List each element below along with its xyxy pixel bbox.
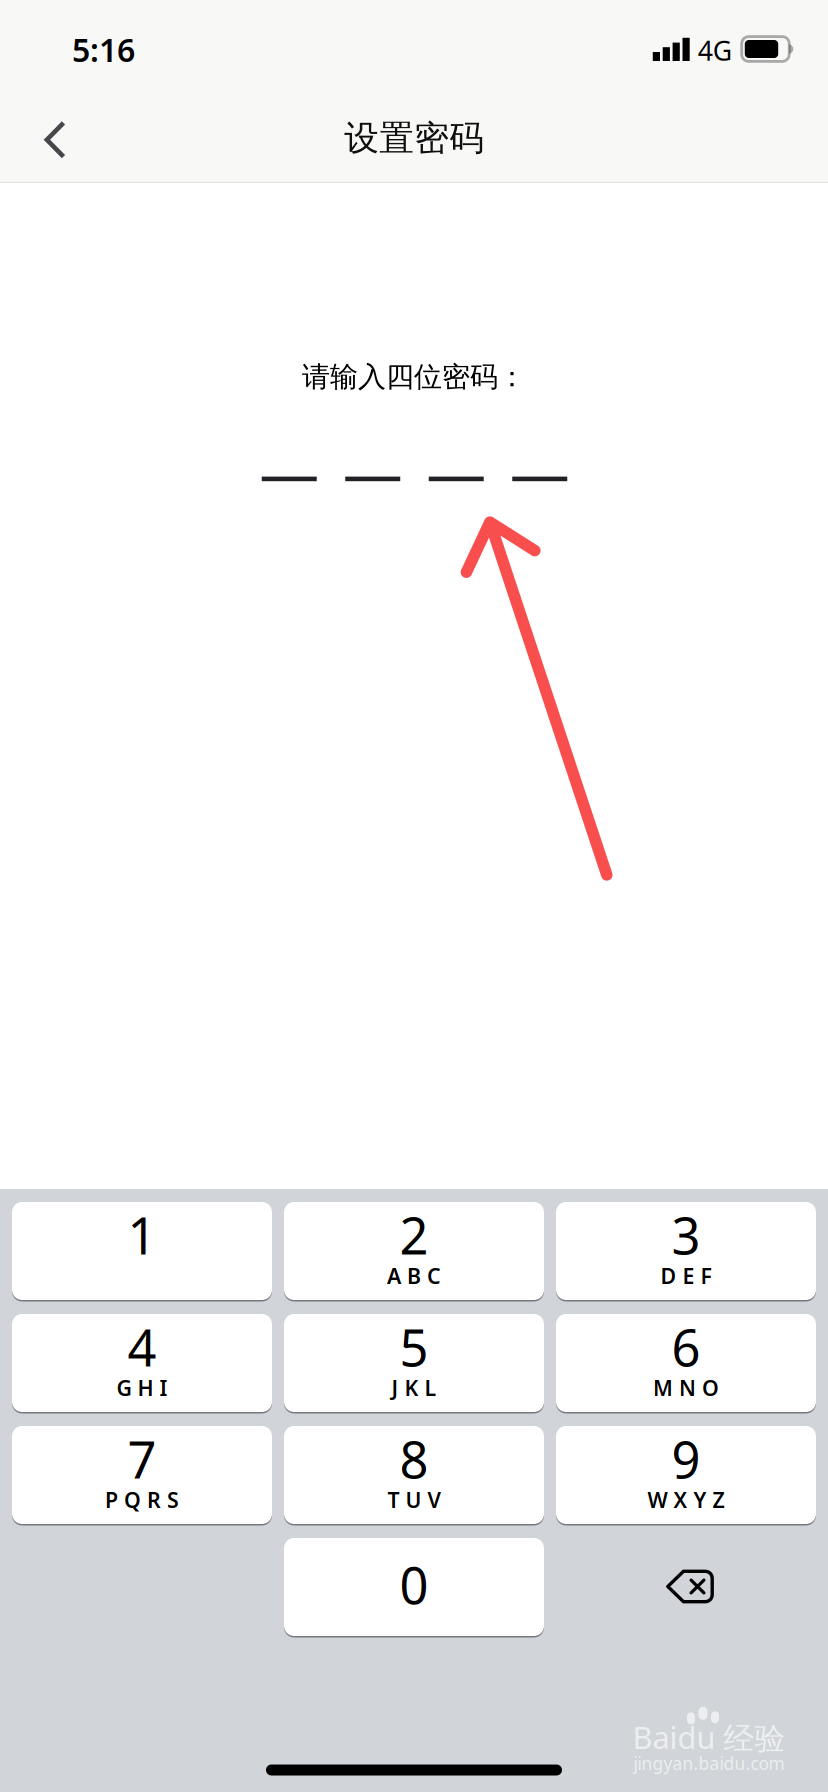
staticText: 6 (671, 1313, 700, 1381)
button[interactable]: Back (6, 94, 102, 185)
staticText: W X Y Z (647, 1485, 724, 1514)
staticText: T U V (387, 1485, 440, 1514)
staticText: 0 (399, 1551, 428, 1618)
staticText: A B C (387, 1261, 441, 1290)
button[interactable]: 9 (556, 1426, 816, 1524)
button[interactable]: 7 (12, 1426, 272, 1524)
staticText: 设置密码 (344, 117, 484, 159)
staticText: M N O (653, 1373, 719, 1402)
button[interactable]: 3 (556, 1202, 816, 1300)
staticText: 8 (399, 1425, 428, 1493)
staticText: 4G (698, 33, 732, 68)
button[interactable]: 6 (556, 1314, 816, 1412)
button[interactable]: 8 (284, 1426, 544, 1524)
button[interactable]: Delete (556, 1538, 816, 1636)
staticText: 9 (671, 1425, 700, 1493)
button[interactable]: 0 (284, 1538, 544, 1636)
staticText: J K L (391, 1373, 436, 1402)
button[interactable]: 4 (12, 1314, 272, 1412)
staticText: 3 (671, 1201, 700, 1269)
staticText: Baidu 经验 (632, 1717, 785, 1758)
staticText: D E F (660, 1261, 711, 1290)
staticText: 2 (399, 1201, 428, 1269)
staticText: 1 (127, 1201, 156, 1269)
staticText: 5:16 (72, 28, 135, 71)
button[interactable]: 5 (284, 1314, 544, 1412)
staticText: 7 (127, 1425, 156, 1493)
staticText: P Q R S (105, 1485, 179, 1514)
button[interactable]: 1 (12, 1202, 272, 1300)
staticText: 请输入四位密码： (302, 360, 526, 394)
staticText: 5 (399, 1313, 428, 1381)
staticText: jingyan.baidu.com (633, 1752, 784, 1775)
staticText: G H I (116, 1373, 167, 1402)
staticText: 4 (127, 1313, 156, 1381)
button[interactable]: 2 (284, 1202, 544, 1300)
